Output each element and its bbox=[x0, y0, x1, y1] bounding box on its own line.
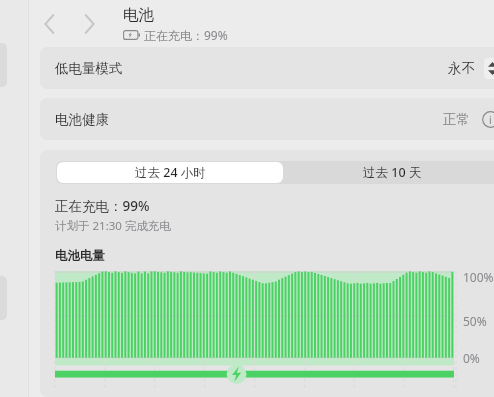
staticText: 电池 bbox=[123, 5, 154, 25]
staticText: i bbox=[489, 113, 492, 127]
staticText: 50% bbox=[463, 313, 487, 329]
button[interactable]: Change bbox=[484, 58, 494, 79]
staticText: 电池电量 bbox=[55, 248, 105, 264]
staticText: 0% bbox=[463, 350, 480, 366]
button[interactable]: Back bbox=[35, 8, 63, 40]
button[interactable]: Forward bbox=[75, 8, 103, 40]
button[interactable]: 低电量模式 bbox=[40, 47, 494, 89]
staticText: 低电量模式 bbox=[55, 60, 123, 77]
staticText: 正常 bbox=[443, 111, 470, 128]
staticText: 正在充电：99% bbox=[144, 27, 228, 43]
button[interactable]: Info bbox=[481, 110, 494, 129]
staticText: 过去 10 天 bbox=[363, 164, 422, 181]
staticText: 100% bbox=[463, 269, 494, 285]
staticText: 永不 bbox=[448, 60, 475, 77]
button[interactable]: 过去 10 天 bbox=[284, 161, 494, 184]
staticText: 正在充电：99% bbox=[55, 197, 150, 215]
staticText: 电池健康 bbox=[55, 111, 109, 128]
button[interactable]: 电池健康 bbox=[40, 98, 494, 140]
staticText: 过去 24 小时 bbox=[135, 164, 206, 181]
button[interactable]: 过去 24 小时 bbox=[57, 162, 283, 183]
staticText: 计划于 21:30 完成充电 bbox=[55, 218, 171, 234]
